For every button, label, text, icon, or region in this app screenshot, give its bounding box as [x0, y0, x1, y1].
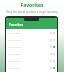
button[interactable]: Place name: [6, 29, 57, 36]
button[interactable]: Place name: [6, 57, 57, 64]
button[interactable]: Place name: [6, 50, 57, 57]
button[interactable]: Place name: [6, 43, 57, 50]
staticText: Keep the places you love a single tap aw…: [6, 10, 58, 14]
staticText: Place name: [8, 52, 21, 55]
staticText: Place name: [8, 59, 21, 62]
button[interactable]: Place name: [6, 36, 57, 43]
button[interactable]: Place name: [6, 64, 57, 71]
staticText: Favorites: [9, 23, 23, 27]
staticText: Place name: [8, 31, 21, 34]
staticText: Place name: [8, 45, 21, 48]
staticText: Place name: [8, 38, 21, 41]
staticText: Place name: [8, 66, 21, 69]
staticText: Favorites: [20, 2, 44, 9]
